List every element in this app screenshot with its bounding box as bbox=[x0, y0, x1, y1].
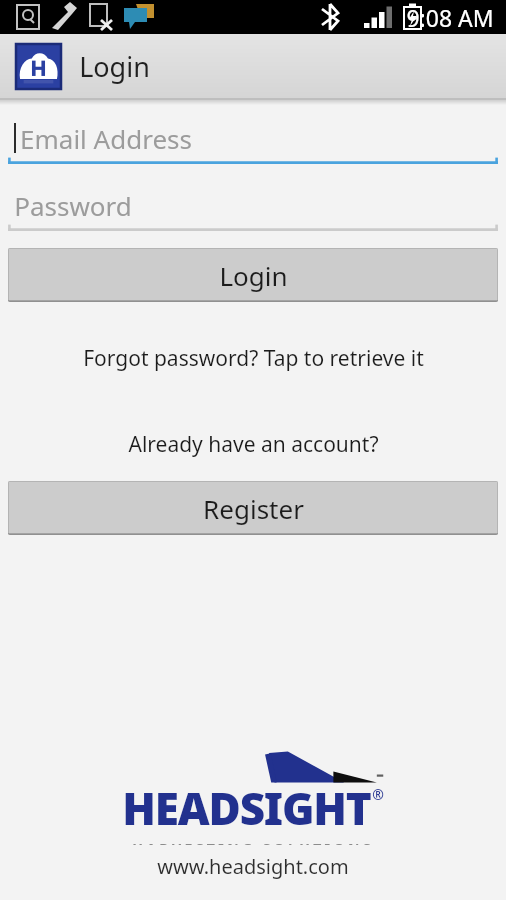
other: Headsight app icon bbox=[16, 44, 61, 89]
staticText: Forgot password? Tap to retrieve it bbox=[83, 344, 424, 373]
button[interactable]: Forgot password? Tap to retrieve it bbox=[0, 335, 506, 382]
staticText: ® bbox=[372, 785, 384, 804]
button[interactable]: Password bbox=[0, 184, 506, 226]
staticText: HEADSIGHT bbox=[122, 778, 371, 838]
staticText: Email Address bbox=[20, 121, 192, 156]
button[interactable]: Email Address bbox=[0, 117, 506, 159]
staticText: HARVESTING SOLUTIONS bbox=[132, 839, 374, 845]
staticText: Already have an account? bbox=[128, 430, 379, 459]
other: Headsight Harvesting Solutions logo bbox=[119, 745, 387, 845]
staticText: Login bbox=[219, 258, 288, 293]
button[interactable]: Register bbox=[8, 481, 498, 535]
staticText: Register bbox=[203, 491, 304, 526]
button[interactable]: Login bbox=[8, 248, 498, 302]
staticText: www.headsight.com bbox=[157, 853, 349, 880]
staticText: Password bbox=[14, 188, 132, 223]
staticText: Login bbox=[79, 48, 150, 85]
staticText: 9:08 AM bbox=[406, 2, 494, 33]
